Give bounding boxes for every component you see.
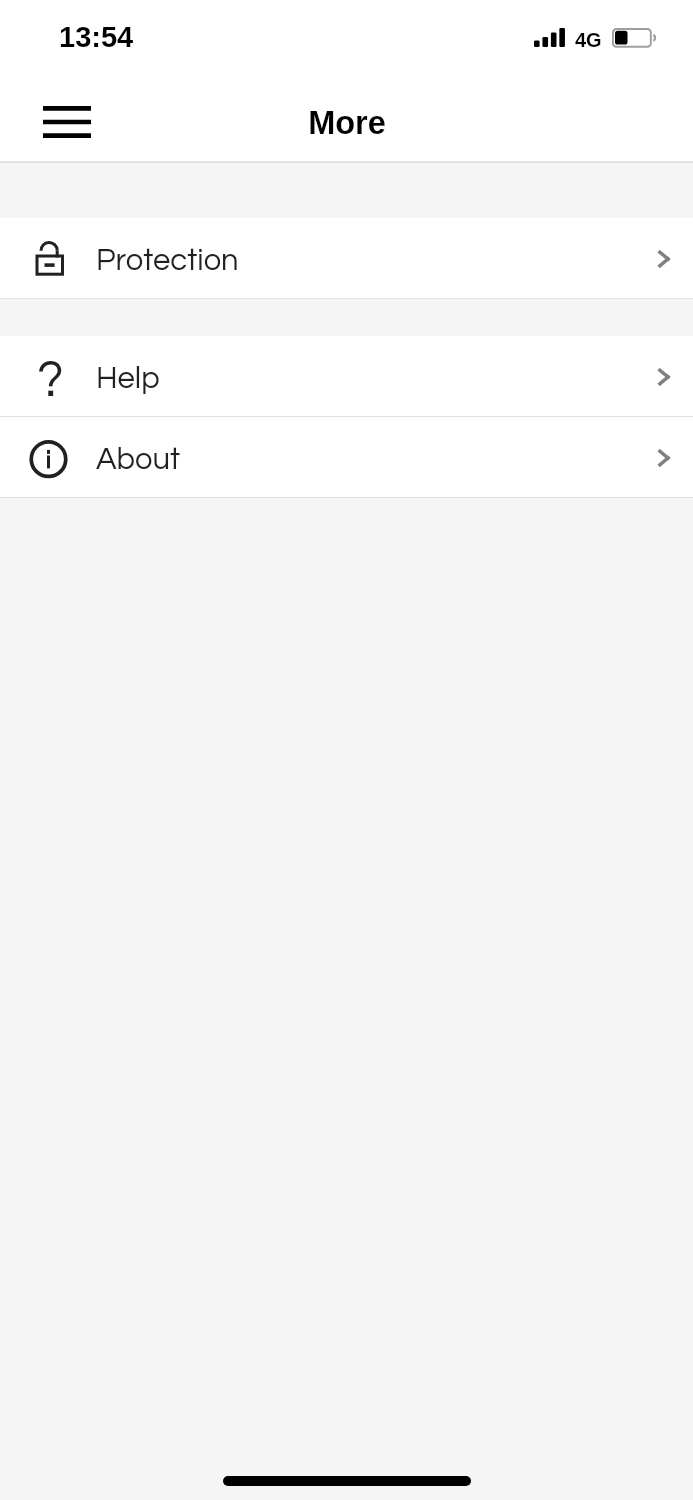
staticText: About xyxy=(96,444,181,476)
other: Battery about one third charged xyxy=(612,28,658,48)
button[interactable]: Protection xyxy=(0,218,693,298)
other: Cellular signal, four bars xyxy=(534,28,566,47)
button[interactable]: About xyxy=(0,417,693,497)
button[interactable]: ? xyxy=(0,336,693,416)
staticText: Help xyxy=(96,363,160,395)
staticText: 13:54 xyxy=(59,21,134,53)
staticText: 4G xyxy=(575,29,602,51)
staticText: ? xyxy=(37,353,64,399)
staticText: More xyxy=(308,105,386,141)
button[interactable]: Open navigation menu xyxy=(35,90,99,154)
staticText: Protection xyxy=(96,245,239,277)
